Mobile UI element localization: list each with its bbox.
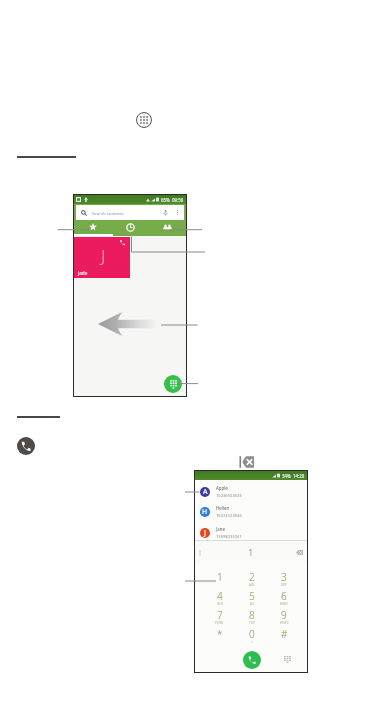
staticText: DEF: [281, 583, 287, 587]
staticText: A: [203, 487, 208, 497]
staticText: Hellen: [216, 505, 230, 511]
button[interactable]: 1: [203, 570, 236, 589]
staticText: 5: [249, 589, 255, 603]
button[interactable]: 9: [268, 608, 300, 627]
staticText: 15274123546: [216, 513, 242, 519]
staticText: H: [202, 507, 208, 517]
button[interactable]: #: [268, 627, 300, 646]
staticText: 2: [249, 570, 255, 584]
staticText: +: [251, 640, 253, 644]
button[interactable]: J: [74, 237, 130, 278]
button[interactable]: 8: [236, 608, 268, 627]
button[interactable]: J: [200, 523, 303, 543]
staticText: J: [204, 528, 206, 538]
button[interactable]: 5: [236, 589, 268, 608]
staticText: 8: [249, 608, 255, 622]
staticText: 6: [281, 589, 287, 603]
staticText: 9: [281, 608, 287, 622]
button[interactable]: 6: [268, 589, 300, 608]
button[interactable]: 0: [236, 627, 268, 646]
button[interactable]: Search contacts: [76, 205, 184, 220]
button[interactable]: *: [203, 627, 236, 646]
staticText: J: [101, 244, 106, 267]
staticText: 1: [248, 546, 254, 559]
button[interactable]: 4: [203, 589, 236, 608]
staticText: TUV: [249, 621, 256, 625]
button[interactable]: Call: [243, 651, 261, 669]
staticText: #: [281, 627, 288, 641]
staticText: Jade: [78, 270, 88, 276]
staticText: *: [217, 627, 223, 641]
staticText: ABC: [249, 583, 256, 587]
staticText: 1: [217, 570, 223, 584]
staticText: MNO: [280, 602, 288, 606]
button[interactable]: H: [200, 502, 303, 522]
staticText: Apple: [216, 485, 228, 491]
staticText: 65% 09:56: [161, 197, 184, 203]
staticText: 15236533535: [216, 493, 242, 499]
staticText: Search contacts: [92, 210, 124, 216]
staticText: 3: [281, 570, 287, 584]
staticText: 7: [217, 608, 223, 622]
button[interactable]: 2: [236, 570, 268, 589]
button[interactable]: Hide keypad: [282, 654, 293, 665]
button[interactable]: Open dialpad: [164, 375, 182, 393]
staticText: WXYZ: [280, 621, 289, 625]
staticText: JKL: [250, 602, 255, 606]
button[interactable]: 7: [203, 608, 236, 627]
staticText: 34% 14:20: [282, 473, 305, 479]
staticText: PQRS: [215, 621, 224, 625]
staticText: GHI: [217, 602, 223, 606]
staticText: Jane: [216, 526, 225, 532]
staticText: 4: [217, 589, 223, 603]
button[interactable]: [149, 220, 186, 236]
button[interactable]: [112, 220, 149, 236]
staticText: 13698235241: [216, 534, 242, 540]
button[interactable]: [74, 220, 112, 236]
button[interactable]: 3: [268, 570, 300, 589]
button[interactable]: A: [200, 482, 303, 502]
staticText: 0: [249, 627, 255, 641]
